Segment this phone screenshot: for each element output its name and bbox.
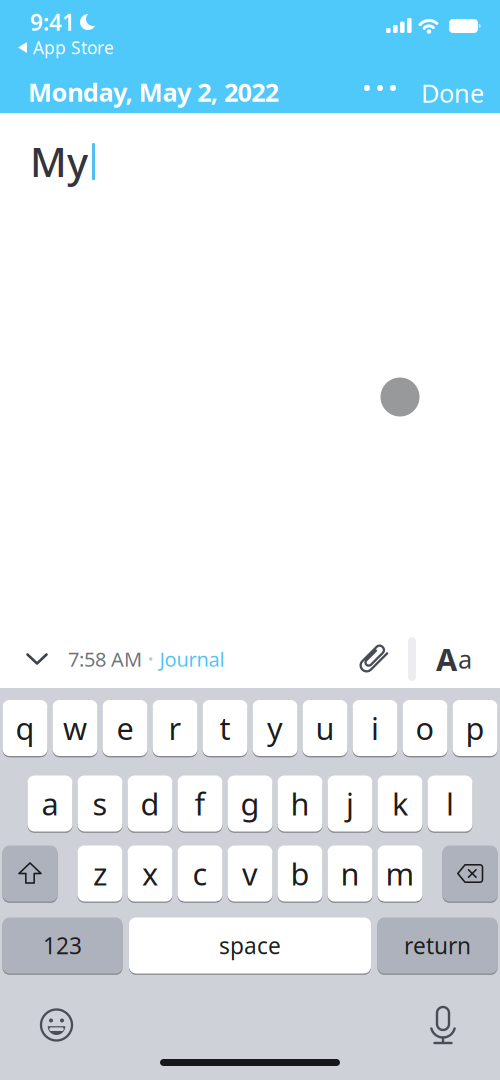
button[interactable]: return: [377, 917, 497, 973]
staticText: w: [63, 708, 87, 748]
staticText: Monday, May 2, 2022: [28, 75, 279, 109]
staticText: o: [415, 708, 434, 748]
button[interactable]: i: [352, 700, 397, 756]
button[interactable]: t: [202, 700, 247, 756]
staticText: A: [436, 639, 457, 679]
button[interactable]: b: [277, 845, 322, 901]
button[interactable]: p: [452, 700, 497, 756]
staticText: My: [30, 135, 88, 188]
staticText: v: [242, 853, 258, 894]
staticText: q: [15, 708, 34, 748]
button[interactable]: Attach: [358, 643, 388, 675]
button[interactable]: e: [102, 700, 147, 756]
staticText: t: [219, 708, 230, 748]
staticText: h: [290, 783, 309, 824]
button[interactable]: 123: [2, 917, 122, 973]
button[interactable]: s: [77, 775, 122, 831]
button[interactable]: o: [402, 700, 447, 756]
button[interactable]: c: [177, 845, 222, 901]
staticText: j: [346, 783, 354, 824]
staticText: n: [340, 853, 359, 894]
staticText: e: [116, 708, 133, 748]
staticText: c: [192, 853, 207, 894]
button[interactable]: r: [152, 700, 197, 756]
staticText: d: [140, 783, 159, 824]
button[interactable]: Dismiss keyboard: [0, 653, 68, 665]
staticText: m: [385, 853, 414, 894]
staticText: i: [371, 708, 379, 748]
button[interactable]: l: [427, 775, 472, 831]
button[interactable]: Shift: [2, 845, 57, 901]
staticText: z: [93, 853, 107, 894]
button[interactable]: Delete: [442, 845, 497, 901]
staticText: y: [267, 708, 283, 748]
staticText: l: [446, 783, 454, 824]
button[interactable]: z: [77, 845, 122, 901]
button[interactable]: w: [52, 700, 97, 756]
button[interactable]: u: [302, 700, 347, 756]
button[interactable]: g: [227, 775, 272, 831]
button[interactable]: n: [327, 845, 372, 901]
staticText: a: [41, 783, 58, 824]
button[interactable]: 7:58 AM: [68, 646, 224, 672]
staticText: u: [315, 708, 334, 748]
button[interactable]: space: [129, 917, 371, 973]
staticText: Done: [421, 76, 484, 110]
button[interactable]: j: [327, 775, 372, 831]
staticText: b: [290, 853, 309, 894]
staticText: 123: [43, 930, 82, 960]
staticText: 7:58 AM: [68, 646, 142, 672]
staticText: space: [219, 930, 281, 960]
button[interactable]: Dictate: [430, 1005, 456, 1045]
staticText: a: [458, 642, 472, 676]
staticText: App Store: [33, 36, 114, 59]
button[interactable]: Text style: [436, 639, 500, 679]
button[interactable]: App Store: [18, 36, 114, 59]
staticText: x: [142, 853, 158, 894]
button[interactable]: q: [2, 700, 47, 756]
button[interactable]: More: [360, 71, 400, 105]
button[interactable]: y: [252, 700, 297, 756]
button[interactable]: Emoji: [39, 1008, 73, 1042]
staticText: g: [240, 783, 259, 824]
staticText: k: [392, 783, 408, 824]
button[interactable]: x: [127, 845, 172, 901]
button[interactable]: v: [227, 845, 272, 901]
staticText: p: [465, 708, 484, 748]
staticText: f: [194, 783, 205, 824]
button[interactable]: Done: [421, 76, 484, 110]
button[interactable]: h: [277, 775, 322, 831]
staticText: Journal: [159, 646, 224, 672]
staticText: r: [168, 708, 181, 748]
staticText: s: [92, 783, 107, 824]
staticText: 9:41: [30, 7, 75, 37]
button[interactable]: k: [377, 775, 422, 831]
button[interactable]: f: [177, 775, 222, 831]
button[interactable]: a: [27, 775, 72, 831]
button[interactable]: d: [127, 775, 172, 831]
button[interactable]: m: [377, 845, 422, 901]
staticText: return: [404, 930, 471, 960]
